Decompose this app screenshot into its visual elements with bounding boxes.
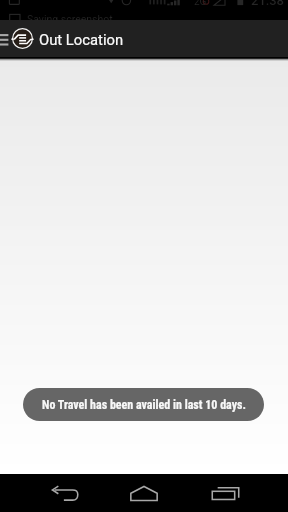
button[interactable]: Back [23,474,107,512]
staticText: 2G [194,0,207,8]
button[interactable]: Open navigation drawer [0,20,9,57]
staticText: No Travel has been availed in last 10 da… [42,398,246,412]
staticText: 21:38 [251,0,284,8]
staticText: Out Location [39,31,124,48]
button[interactable]: Home [102,474,186,512]
staticText: Saving screenshot... [27,13,122,25]
button[interactable]: Recent apps [183,474,267,512]
button[interactable]: No Travel has been availed in last 10 da… [23,388,264,421]
